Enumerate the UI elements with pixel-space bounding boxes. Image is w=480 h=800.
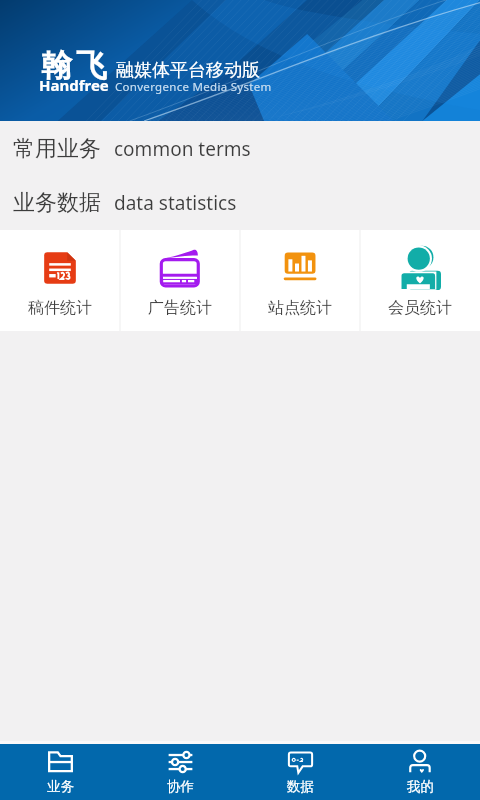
button[interactable]: 站点统计 xyxy=(240,230,360,331)
staticText: 协作 xyxy=(167,778,194,795)
staticText: 业务 xyxy=(47,778,74,795)
staticText: 会员统计 xyxy=(388,298,452,318)
other: Profile xyxy=(407,748,434,775)
button[interactable]: Business xyxy=(0,744,120,800)
staticText: data statistics xyxy=(114,190,237,216)
staticText: 我的 xyxy=(407,778,434,795)
staticText: 广告统计 xyxy=(148,298,212,318)
staticText: 数据 xyxy=(287,778,314,795)
other: Business xyxy=(47,748,74,775)
staticText: 业务数据 xyxy=(13,189,101,217)
button[interactable]: 稿件统计 xyxy=(0,230,120,331)
staticText: Convergence Media System xyxy=(115,79,272,95)
other: Data xyxy=(287,748,314,775)
staticText: 稿件统计 xyxy=(28,298,92,318)
staticText: 常用业务 xyxy=(13,135,101,163)
staticText: common terms xyxy=(114,136,251,162)
button[interactable]: Profile xyxy=(360,744,480,800)
staticText: Handfree xyxy=(39,75,109,95)
other: Collaboration xyxy=(167,748,194,775)
staticText: 站点统计 xyxy=(268,298,332,318)
button[interactable]: Data xyxy=(240,744,360,800)
button[interactable]: Collaboration xyxy=(120,744,240,800)
button[interactable]: 会员统计 xyxy=(360,230,480,331)
staticText: 融媒体平台移动版 xyxy=(116,59,260,82)
button[interactable]: 广告统计 xyxy=(120,230,240,331)
staticText: 翰飞 xyxy=(39,46,109,85)
